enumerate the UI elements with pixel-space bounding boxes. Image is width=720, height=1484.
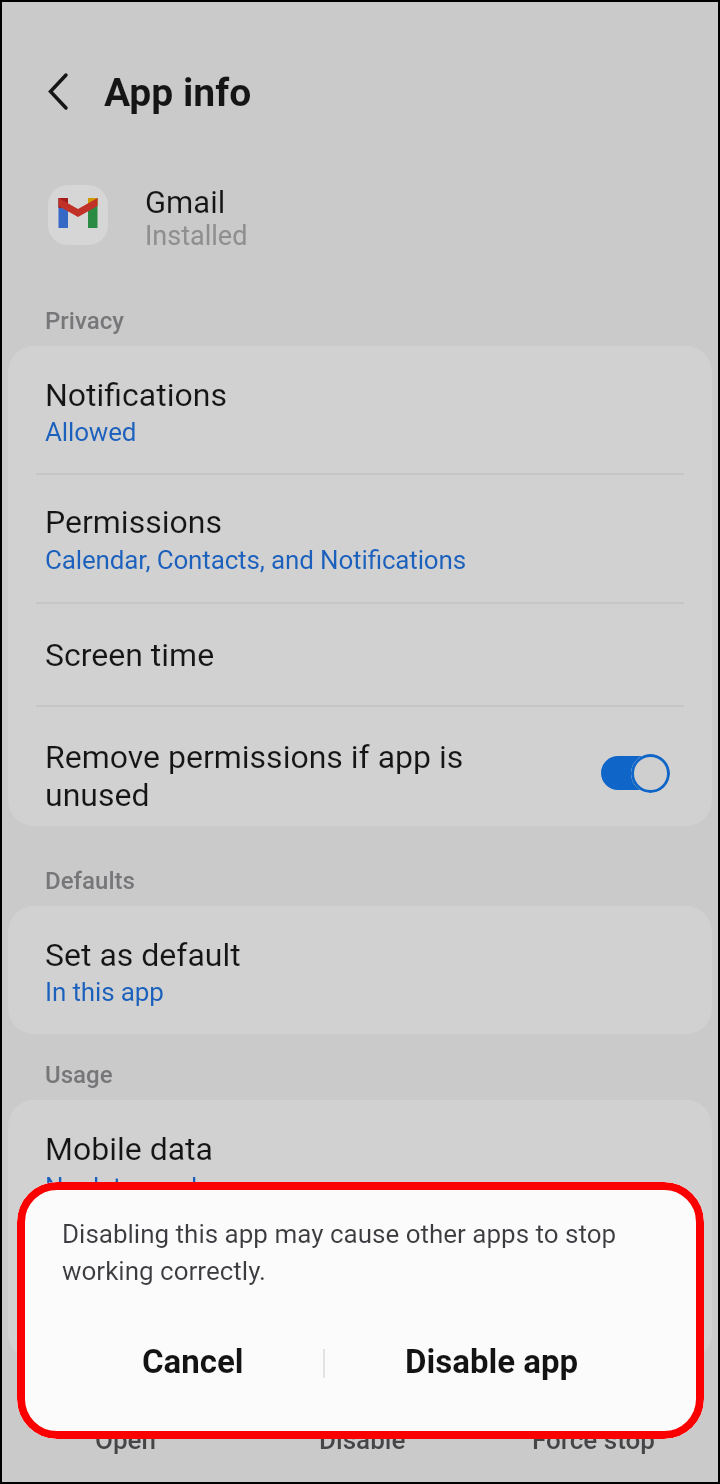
staticText: Set as default — [45, 936, 241, 974]
staticText: Notifications — [45, 376, 227, 414]
button[interactable]: Force stop — [523, 1415, 663, 1465]
staticText: Screen time — [45, 636, 215, 674]
button[interactable]: Screen time — [8, 603, 712, 706]
button[interactable]: Disable — [302, 1415, 422, 1465]
button[interactable]: Mobile data — [8, 1100, 712, 1360]
staticText: Open — [95, 1425, 157, 1455]
staticText: Mobile data — [45, 1130, 213, 1168]
button[interactable]: Cancel — [123, 1329, 263, 1393]
staticText: Remove permissions if app is — [45, 738, 464, 776]
button[interactable] — [36, 66, 88, 118]
staticText: Disabling this app may cause other apps … — [62, 1219, 662, 1286]
staticText: Allowed — [45, 417, 137, 447]
staticText: In this app — [45, 977, 164, 1007]
button[interactable]: Permissions — [8, 474, 712, 603]
button[interactable] — [601, 756, 669, 790]
staticText: Gmail — [145, 184, 226, 220]
staticText: Permissions — [45, 503, 222, 541]
button[interactable]: Remove permissions if app is — [8, 706, 712, 826]
staticText: Privacy — [45, 307, 124, 335]
staticText: Disable app — [405, 1342, 579, 1381]
staticText: Cancel — [142, 1342, 244, 1381]
button[interactable]: Open — [65, 1415, 185, 1465]
staticText: Force stop — [532, 1425, 655, 1455]
staticText: Calendar, Contacts, and Notifications — [45, 545, 467, 575]
staticText: App info — [104, 70, 252, 116]
staticText: Usage — [45, 1061, 113, 1089]
button[interactable]: Set as default — [8, 906, 712, 1034]
staticText: unused — [45, 776, 150, 814]
staticText: Installed — [145, 220, 248, 252]
staticText: Defaults — [45, 867, 135, 895]
staticText: No data used — [45, 1172, 198, 1202]
staticText: Disable — [319, 1425, 406, 1455]
button[interactable]: Disable app — [401, 1329, 581, 1393]
button[interactable]: Notifications — [8, 346, 712, 474]
